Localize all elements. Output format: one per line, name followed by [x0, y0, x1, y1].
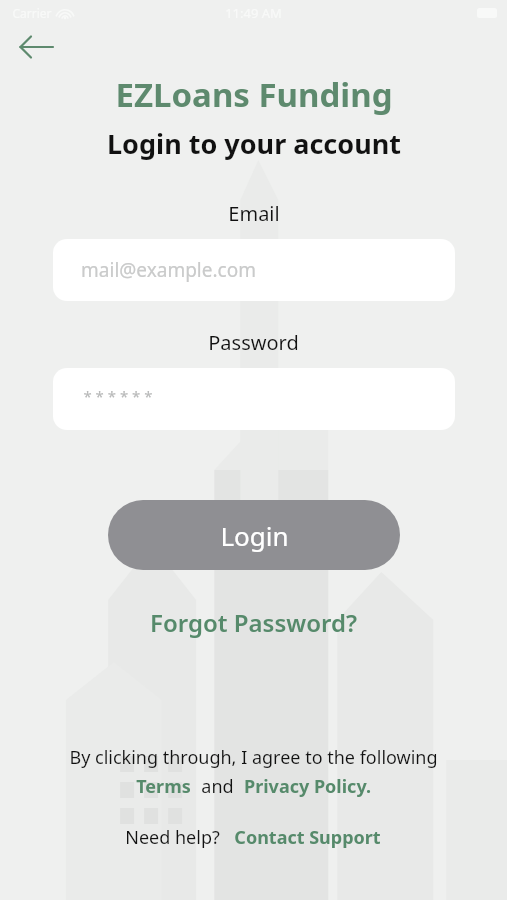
staticText: EZLoans Funding	[115, 72, 393, 117]
button[interactable]: Privacy Policy.	[242, 774, 373, 799]
staticText: Terms	[136, 774, 191, 799]
staticText: Need help?	[125, 825, 220, 850]
staticText: By clicking through, I agree to the foll…	[69, 745, 438, 770]
staticText: Forgot Password?	[150, 606, 357, 639]
staticText: Contact Support	[234, 825, 381, 850]
staticText: and	[201, 774, 234, 799]
staticText: * * * * * *	[83, 386, 153, 406]
staticText: Privacy Policy.	[244, 774, 371, 799]
button[interactable]: mail@example.com	[53, 239, 455, 301]
button[interactable]: Login	[108, 500, 400, 570]
staticText: Login	[220, 518, 289, 553]
button[interactable]: Contact Support	[232, 825, 383, 850]
staticText: Password	[208, 329, 299, 356]
staticText: Carrier	[12, 5, 52, 21]
staticText: Login to your account	[107, 125, 401, 162]
staticText: mail@example.com	[81, 257, 256, 283]
button[interactable]: Forgot Password?	[140, 600, 367, 645]
button[interactable]: Terms	[134, 774, 193, 799]
staticText: Email	[228, 200, 280, 227]
button[interactable]: Back	[14, 26, 58, 68]
button[interactable]: * * * * * *	[53, 368, 455, 430]
